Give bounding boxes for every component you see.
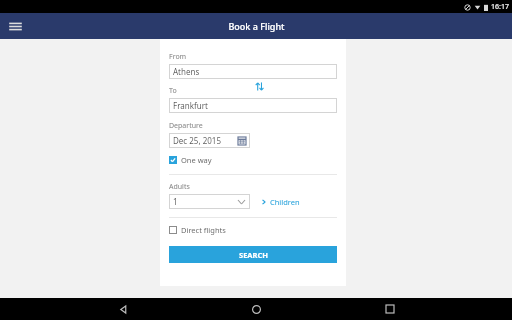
staticText: Athens xyxy=(173,66,200,77)
button[interactable]: Direct flights xyxy=(169,225,226,235)
button[interactable]: Open navigation menu xyxy=(5,16,25,36)
staticText: Dec 25, 2015 xyxy=(173,135,221,146)
button[interactable]: Recent apps xyxy=(379,298,401,320)
staticText: Departure xyxy=(169,121,203,131)
button[interactable]: One way xyxy=(169,155,212,165)
staticText: Direct flights xyxy=(181,225,226,235)
button[interactable]: Athens xyxy=(169,64,337,79)
staticText: 16:17 xyxy=(491,2,509,12)
button[interactable]: Children xyxy=(261,197,300,207)
staticText: One way xyxy=(181,155,212,165)
button[interactable]: SEARCH xyxy=(169,246,337,263)
button[interactable]: Frankfurt xyxy=(169,98,337,113)
button[interactable]: Home xyxy=(245,298,267,320)
staticText: Children xyxy=(270,197,300,207)
button[interactable]: Back xyxy=(112,298,134,320)
staticText: Adults xyxy=(169,182,190,192)
button[interactable]: Dec 25, 2015 xyxy=(169,133,250,148)
staticText: From xyxy=(169,52,187,62)
button[interactable]: Swap origin and destination xyxy=(252,79,266,93)
staticText: Frankfurt xyxy=(173,100,208,111)
staticText: 1 xyxy=(173,196,178,207)
staticText: To xyxy=(169,86,177,96)
staticText: SEARCH xyxy=(239,250,268,260)
staticText: Book a Flight xyxy=(228,20,285,32)
button[interactable]: 1 xyxy=(169,194,250,209)
